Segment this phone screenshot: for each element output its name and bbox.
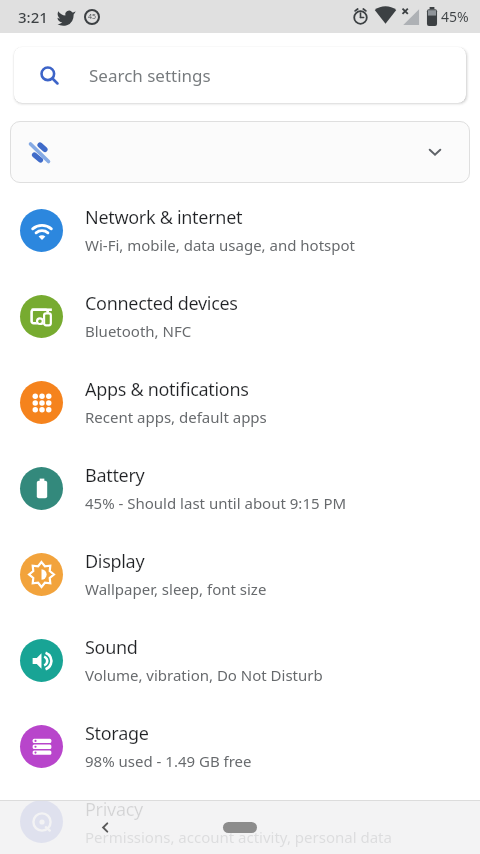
staticText: Wi-Fi, mobile, data usage, and hotspot bbox=[85, 235, 355, 255]
button[interactable]: Apps & notifications bbox=[0, 359, 480, 445]
staticText: Apps & notifications bbox=[85, 377, 249, 402]
button[interactable]: Connected devices bbox=[0, 273, 480, 359]
button[interactable]: Display bbox=[0, 531, 480, 617]
staticText: Display bbox=[85, 549, 145, 574]
staticText: 3:21 bbox=[18, 7, 48, 27]
staticText: Storage bbox=[85, 721, 149, 746]
staticText: 98% used - 1.49 GB free bbox=[85, 751, 252, 771]
button[interactable] bbox=[98, 820, 113, 835]
button[interactable]: Privacy bbox=[0, 789, 480, 854]
staticText: 45% - Should last until about 9:15 PM bbox=[85, 493, 347, 513]
staticText: 45% bbox=[441, 7, 469, 26]
staticText: Privacy bbox=[85, 797, 143, 822]
staticText: Sound bbox=[85, 635, 138, 660]
staticText: Permissions, account activity, personal … bbox=[85, 827, 392, 847]
button[interactable]: Sound bbox=[0, 617, 480, 703]
button[interactable]: Battery bbox=[0, 445, 480, 531]
button[interactable]: Search settings bbox=[14, 47, 466, 103]
button[interactable]: Storage bbox=[0, 703, 480, 789]
staticText: Search settings bbox=[89, 64, 211, 87]
button[interactable] bbox=[10, 121, 470, 183]
staticText: Connected devices bbox=[85, 291, 238, 316]
staticText: Recent apps, default apps bbox=[85, 407, 267, 427]
staticText: Wallpaper, sleep, font size bbox=[85, 579, 267, 599]
staticText: Volume, vibration, Do Not Disturb bbox=[85, 665, 323, 685]
button[interactable]: Network & internet bbox=[0, 187, 480, 273]
staticText: Bluetooth, NFC bbox=[85, 321, 192, 341]
button[interactable] bbox=[223, 822, 257, 833]
staticText: Battery bbox=[85, 463, 145, 488]
staticText: 45 bbox=[88, 12, 97, 22]
staticText: Network & internet bbox=[85, 205, 243, 230]
